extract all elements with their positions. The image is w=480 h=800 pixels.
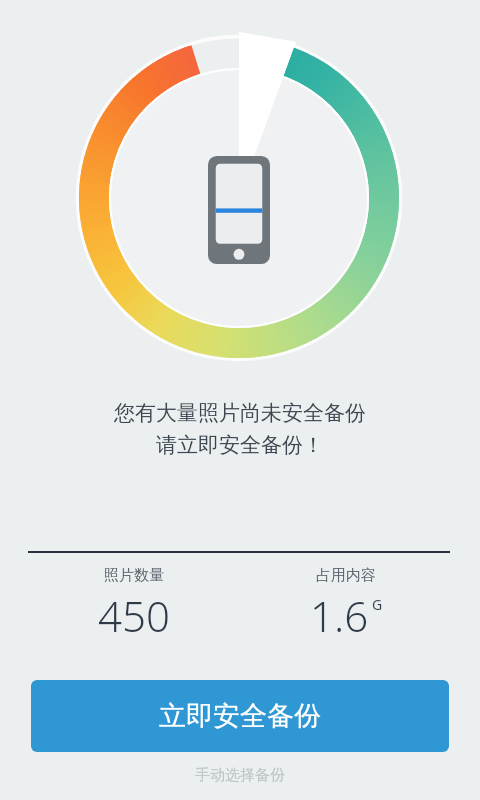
other: Backup status xyxy=(74,33,404,363)
button[interactable]: 占用内容 xyxy=(240,566,452,644)
button[interactable]: 照片数量 xyxy=(28,566,240,644)
staticText: 手动选择备份 xyxy=(195,766,285,785)
staticText: 立即安全备份 xyxy=(159,699,321,733)
staticText: 1.6 xyxy=(310,587,369,644)
staticText: 请立即安全备份！ xyxy=(156,432,324,458)
button[interactable]: 手动选择备份 xyxy=(181,762,299,789)
staticText: 您有大量照片尚未安全备份 xyxy=(114,400,366,426)
staticText: 450 xyxy=(98,587,170,644)
staticText: G xyxy=(372,595,383,614)
staticText: 占用内容 xyxy=(316,566,376,585)
staticText: 照片数量 xyxy=(104,566,164,585)
button[interactable]: 立即安全备份 xyxy=(31,680,449,752)
